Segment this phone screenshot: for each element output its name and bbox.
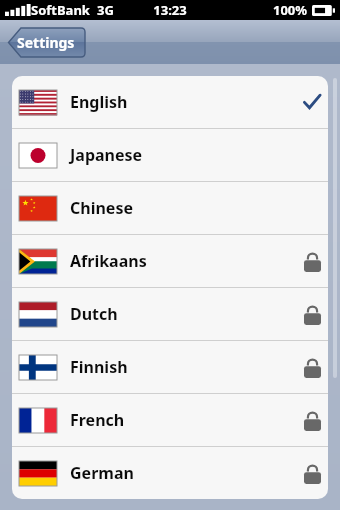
staticText: SoftBank [31, 1, 90, 19]
button[interactable]: English [12, 76, 328, 128]
staticText: Chinese [70, 197, 133, 219]
staticText: 100% [273, 1, 308, 19]
staticText: 3G [97, 1, 114, 19]
staticText: French [70, 409, 125, 431]
button[interactable]: Afrikaans [12, 235, 328, 287]
staticText: Afrikaans [70, 250, 147, 272]
other: Selected [303, 93, 321, 111]
button[interactable]: Chinese [12, 182, 328, 234]
other: Locked [304, 463, 321, 484]
staticText: German [70, 462, 134, 484]
staticText: Finnish [70, 356, 128, 378]
staticText: Japanese [70, 144, 143, 166]
staticText: 13:23 [153, 1, 187, 19]
other: Locked [304, 357, 321, 378]
button[interactable]: French [12, 394, 328, 446]
button[interactable]: German [12, 447, 328, 499]
staticText: Dutch [70, 303, 118, 325]
button[interactable]: Settings [7, 28, 85, 57]
button[interactable]: Finnish [12, 341, 328, 393]
other: Locked [304, 410, 321, 431]
other: Locked [304, 251, 321, 272]
staticText: English [70, 91, 128, 113]
other: Locked [304, 304, 321, 325]
button[interactable]: Dutch [12, 288, 328, 340]
staticText: Settings [17, 33, 75, 52]
button[interactable]: Japanese [12, 129, 328, 181]
